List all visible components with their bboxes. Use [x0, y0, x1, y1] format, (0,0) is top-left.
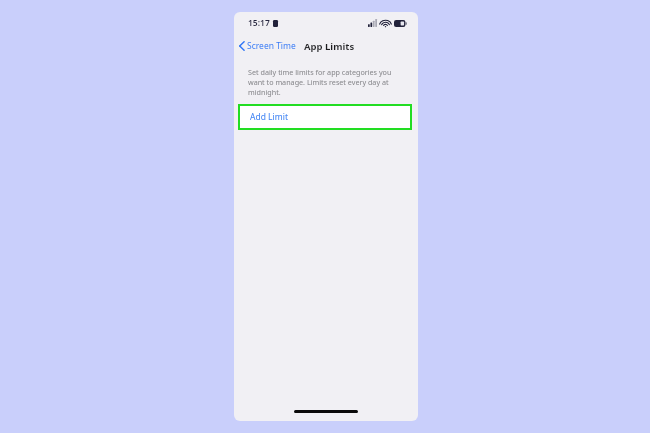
button[interactable]: Add Limit	[240, 106, 410, 128]
staticText: 15:17	[248, 17, 270, 29]
staticText: Screen Time	[247, 40, 296, 52]
staticText: Add Limit	[250, 111, 288, 123]
button[interactable]: Screen Time	[234, 37, 302, 55]
staticText: Set daily time limits for app categories…	[248, 67, 402, 97]
staticText: App Limits	[304, 40, 355, 53]
